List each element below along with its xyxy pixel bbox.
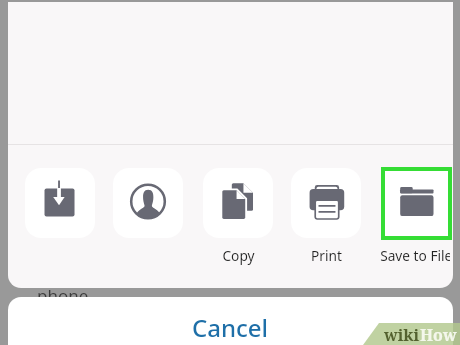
staticText: Print [311,246,342,265]
button[interactable]: Print [291,168,361,238]
button[interactable]: Save to Files [385,171,448,236]
button[interactable]: Cancel [8,297,453,345]
button[interactable]: Copy [203,168,273,238]
button[interactable]: Save to device [25,168,95,238]
staticText: wiki [384,324,420,345]
staticText: How [420,324,457,345]
staticText: phone [37,284,89,307]
staticText: Save to Files [380,246,450,265]
staticText: Cancel [192,311,269,344]
button[interactable]: Add to contact [113,168,183,238]
staticText: Copy [222,246,255,265]
